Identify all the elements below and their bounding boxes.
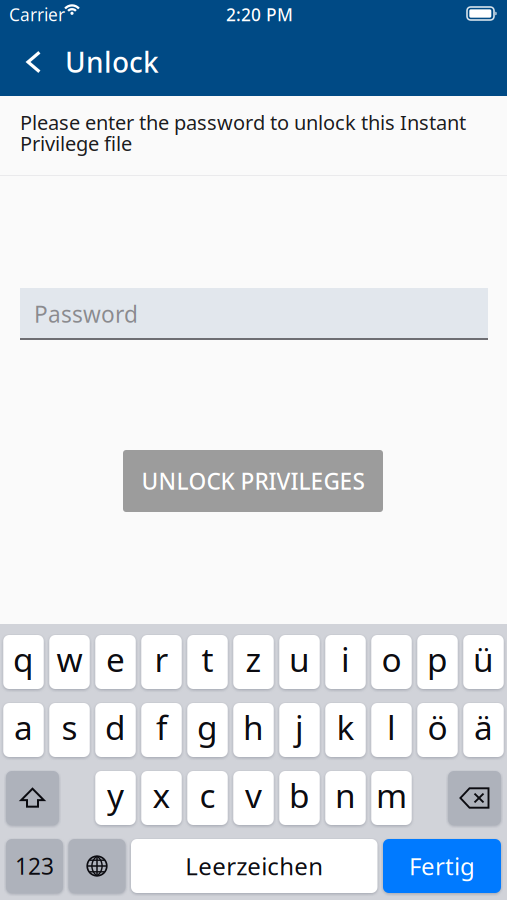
staticText: Password bbox=[34, 299, 138, 329]
button[interactable]: a bbox=[3, 703, 44, 757]
staticText: f bbox=[156, 705, 167, 749]
staticText: y bbox=[107, 773, 124, 817]
button[interactable]: b bbox=[279, 771, 320, 825]
button[interactable]: z bbox=[233, 635, 274, 689]
staticText: h bbox=[243, 705, 264, 749]
button[interactable]: l bbox=[371, 703, 412, 757]
staticText: i bbox=[341, 637, 350, 681]
button[interactable]: ü bbox=[463, 635, 504, 689]
button[interactable]: w bbox=[49, 635, 90, 689]
button[interactable]: r bbox=[141, 635, 182, 689]
staticText: 2:20 PM bbox=[226, 3, 293, 26]
button[interactable]: 123 bbox=[6, 839, 63, 893]
staticText: t bbox=[201, 637, 213, 681]
button[interactable]: p bbox=[417, 635, 458, 689]
staticText: q bbox=[13, 637, 34, 681]
button[interactable]: f bbox=[141, 703, 182, 757]
button[interactable]: o bbox=[371, 635, 412, 689]
staticText: ä bbox=[474, 705, 493, 749]
button[interactable]: Delete bbox=[448, 771, 501, 825]
staticText: Privilege file bbox=[20, 130, 132, 157]
button[interactable]: q bbox=[3, 635, 44, 689]
staticText: v bbox=[245, 773, 262, 817]
button[interactable]: v bbox=[233, 771, 274, 825]
staticText: o bbox=[381, 637, 401, 681]
staticText: m bbox=[376, 773, 407, 817]
button[interactable]: Unlock bbox=[0, 40, 260, 84]
staticText: z bbox=[245, 637, 261, 681]
button[interactable]: s bbox=[49, 703, 90, 757]
staticText: x bbox=[152, 773, 170, 817]
button[interactable]: ä bbox=[463, 703, 504, 757]
staticText: k bbox=[336, 705, 354, 749]
staticText: p bbox=[427, 637, 448, 681]
staticText: Fertig bbox=[409, 850, 475, 882]
button[interactable]: Leerzeichen bbox=[131, 839, 377, 893]
staticText: j bbox=[295, 705, 304, 749]
staticText: r bbox=[154, 637, 168, 681]
staticText: w bbox=[56, 637, 82, 681]
button[interactable]: g bbox=[187, 703, 228, 757]
button[interactable]: i bbox=[325, 635, 366, 689]
button[interactable]: j bbox=[279, 703, 320, 757]
button[interactable]: ö bbox=[417, 703, 458, 757]
button[interactable]: Fertig bbox=[383, 839, 501, 893]
staticText: l bbox=[387, 705, 396, 749]
staticText: UNLOCK PRIVILEGES bbox=[141, 466, 364, 496]
staticText: c bbox=[199, 773, 215, 817]
staticText: d bbox=[105, 705, 126, 749]
button[interactable]: Shift bbox=[6, 771, 59, 825]
staticText: a bbox=[14, 705, 33, 749]
staticText: n bbox=[335, 773, 356, 817]
staticText: Carrier bbox=[9, 3, 65, 26]
button[interactable]: u bbox=[279, 635, 320, 689]
button[interactable]: c bbox=[187, 771, 228, 825]
staticText: 123 bbox=[15, 851, 54, 881]
button[interactable]: d bbox=[95, 703, 136, 757]
staticText: ö bbox=[427, 705, 447, 749]
staticText: Leerzeichen bbox=[185, 850, 323, 882]
button[interactable]: k bbox=[325, 703, 366, 757]
staticText: s bbox=[61, 705, 77, 749]
staticText: e bbox=[106, 637, 125, 681]
staticText: Please enter the password to unlock this… bbox=[20, 109, 466, 136]
button[interactable]: n bbox=[325, 771, 366, 825]
staticText: u bbox=[289, 637, 310, 681]
staticText: g bbox=[197, 705, 218, 749]
button[interactable]: y bbox=[95, 771, 136, 825]
button[interactable]: e bbox=[95, 635, 136, 689]
button[interactable]: UNLOCK PRIVILEGES bbox=[123, 450, 383, 512]
button[interactable]: t bbox=[187, 635, 228, 689]
staticText: ü bbox=[473, 637, 494, 681]
staticText: Unlock bbox=[65, 43, 159, 81]
button[interactable]: Next keyboard bbox=[68, 839, 125, 893]
button[interactable]: m bbox=[371, 771, 412, 825]
button[interactable]: x bbox=[141, 771, 182, 825]
staticText: b bbox=[289, 773, 310, 817]
button[interactable]: h bbox=[233, 703, 274, 757]
